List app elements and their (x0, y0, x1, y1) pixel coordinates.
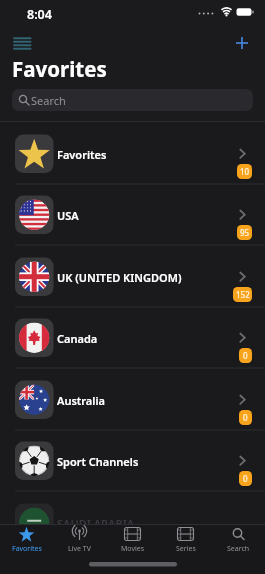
button[interactable] (230, 31, 254, 55)
button[interactable]: Series (159, 524, 212, 560)
button[interactable]: Search (12, 89, 253, 111)
button[interactable]: Movies (106, 524, 159, 560)
staticText: Favorites (12, 55, 107, 83)
staticText: 8:04 (27, 6, 52, 23)
staticText: SAUDI ARABIA (57, 516, 135, 531)
staticText: Sport Channels (57, 454, 139, 469)
staticText: 10 (240, 166, 250, 177)
staticText: Series (176, 544, 196, 554)
staticText: 0 (243, 350, 248, 361)
staticText: USA (57, 208, 79, 223)
staticText: UK (UNITED KINGDOM) (57, 270, 182, 285)
button[interactable]: Favorites (0, 123, 265, 185)
button[interactable] (10, 33, 36, 54)
staticText: Search (31, 93, 66, 108)
button[interactable]: Canada (0, 307, 265, 369)
staticText: Australia (57, 393, 105, 408)
staticText: 0 (243, 473, 248, 484)
button[interactable]: UK (UNITED KINGDOM) (0, 246, 265, 308)
staticText: Search (227, 544, 250, 554)
staticText: Movies (121, 544, 145, 554)
staticText: 152 (236, 289, 250, 300)
staticText: Favorites (12, 544, 42, 554)
staticText: 0 (243, 412, 248, 423)
button[interactable]: Search (212, 524, 265, 560)
staticText: Live TV (68, 544, 91, 554)
staticText: 95 (240, 227, 250, 238)
button[interactable]: Favorites (0, 524, 53, 560)
staticText: Canada (57, 331, 98, 346)
button[interactable]: Live TV (53, 524, 106, 560)
button[interactable]: Australia (0, 369, 265, 431)
button[interactable]: USA (0, 184, 265, 246)
staticText: Favorites (57, 147, 107, 162)
button[interactable]: SAUDI ARABIA (0, 492, 265, 554)
button[interactable]: Sport Channels (0, 430, 265, 492)
